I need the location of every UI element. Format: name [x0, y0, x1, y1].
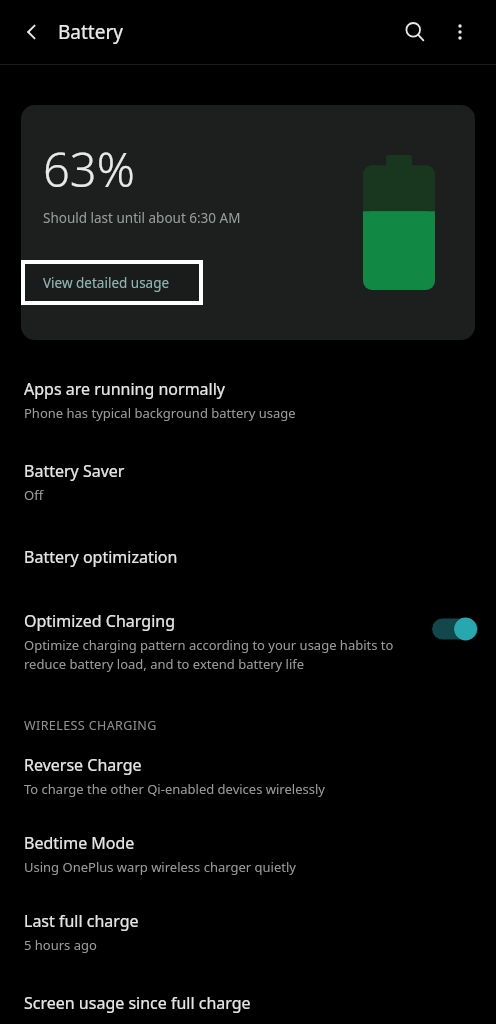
- staticText: Should last until about 6:30 AM: [43, 209, 241, 227]
- staticText: Screen usage since full charge: [24, 992, 251, 1014]
- button[interactable]: Back: [10, 10, 54, 54]
- staticText: Off: [24, 486, 44, 504]
- staticText: Optimized Charging: [24, 610, 175, 632]
- button[interactable]: Battery Saver: [0, 460, 496, 504]
- button[interactable]: Battery optimization: [0, 546, 496, 568]
- staticText: Bedtime Mode: [24, 832, 135, 854]
- staticText: WIRELESS CHARGING: [24, 717, 157, 734]
- button[interactable]: View detailed usage: [21, 260, 203, 305]
- button[interactable]: Optimized Charging toggle: [432, 616, 478, 642]
- staticText: Using OnePlus warp wireless charger quie…: [24, 858, 296, 876]
- button[interactable]: Reverse Charge: [0, 754, 496, 798]
- button[interactable]: More options: [438, 10, 482, 54]
- staticText: View detailed usage: [43, 274, 170, 292]
- staticText: Battery optimization: [24, 546, 178, 568]
- button[interactable]: Last full charge: [0, 910, 496, 954]
- button[interactable]: Optimized Charging: [0, 610, 496, 673]
- staticText: Battery: [58, 19, 123, 45]
- button[interactable]: Apps are running normally: [0, 378, 496, 422]
- staticText: 63%: [43, 137, 135, 201]
- staticText: 5 hours ago: [24, 936, 97, 954]
- staticText: Last full charge: [24, 910, 139, 932]
- button[interactable]: Bedtime Mode: [0, 832, 496, 876]
- button[interactable]: Search: [392, 9, 438, 55]
- staticText: Apps are running normally: [24, 378, 225, 400]
- staticText: Optimize charging pattern according to y…: [24, 636, 414, 673]
- staticText: To charge the other Qi-enabled devices w…: [24, 780, 325, 798]
- staticText: Battery Saver: [24, 460, 125, 482]
- button[interactable]: Screen usage since full charge: [0, 992, 496, 1014]
- staticText: Reverse Charge: [24, 754, 142, 776]
- staticText: Phone has typical background battery usa…: [24, 404, 296, 422]
